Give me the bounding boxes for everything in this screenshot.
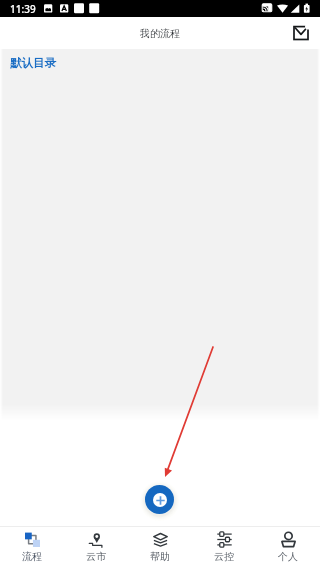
staticText: 流程	[22, 550, 42, 563]
button[interactable]: 帮助	[128, 527, 192, 568]
staticText: 云市	[86, 550, 106, 563]
button[interactable]: Messages	[288, 20, 314, 46]
staticText: 云控	[214, 550, 234, 563]
staticText: 个人	[278, 550, 298, 563]
staticText: 默认目录	[10, 56, 56, 70]
staticText: 11:39	[10, 2, 36, 16]
button[interactable]: 默认目录	[0, 49, 320, 77]
staticText: 我的流程	[140, 27, 180, 40]
staticText: 帮助	[150, 550, 170, 563]
button[interactable]: 云控	[192, 527, 256, 568]
button[interactable]: Add	[145, 485, 174, 514]
button[interactable]: 流程	[0, 527, 64, 568]
button[interactable]: 个人	[256, 527, 320, 568]
button[interactable]: 云市	[64, 527, 128, 568]
